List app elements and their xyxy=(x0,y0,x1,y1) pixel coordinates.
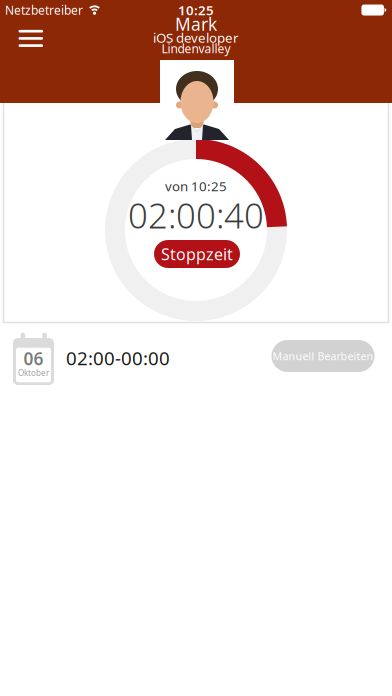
staticText: 06 xyxy=(23,347,43,370)
staticText: 02:00-00:00 xyxy=(66,346,170,370)
staticText: Lindenvalley xyxy=(161,40,230,56)
staticText: Stoppzeit xyxy=(161,243,233,265)
button[interactable]: Stoppzeit xyxy=(154,240,240,268)
staticText: Mark xyxy=(175,12,217,35)
staticText: Netzbetreiber xyxy=(5,2,83,18)
staticText: 10:25 xyxy=(178,1,214,19)
staticText: iOS developer xyxy=(153,29,239,46)
button[interactable]: Menu xyxy=(14,23,48,53)
staticText: Manuell Bearbeiten xyxy=(272,349,373,363)
staticText: 02:00:40 xyxy=(128,192,264,238)
staticText: von 10:25 xyxy=(165,177,227,195)
staticText: Oktober xyxy=(18,368,49,378)
button[interactable]: Manuell Bearbeiten xyxy=(271,340,374,372)
